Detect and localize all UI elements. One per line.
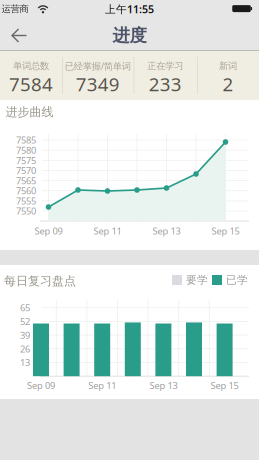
staticText: 2 (222, 72, 233, 96)
button[interactable]: 已学 (212, 273, 248, 286)
staticText: Sep 09 (27, 379, 55, 392)
staticText: 已学 (226, 273, 248, 286)
staticText: 7555 (16, 195, 36, 207)
staticText: 新词 (219, 60, 237, 72)
staticText: 7584 (9, 72, 53, 96)
staticText: 7570 (16, 164, 36, 177)
staticText: 每日复习盘点 (4, 274, 76, 288)
staticText: 进度 (112, 25, 146, 46)
staticText: 进步曲线 (5, 105, 53, 119)
staticText: 7580 (16, 144, 36, 156)
staticText: 26 (20, 343, 30, 355)
staticText: 正在学习 (147, 60, 183, 72)
staticText: Sep 13 (152, 225, 180, 237)
staticText: 39 (20, 329, 30, 341)
staticText: 7560 (16, 184, 36, 197)
staticText: 要学 (186, 273, 208, 286)
staticText: 233 (149, 72, 182, 96)
staticText: Sep 13 (149, 379, 177, 392)
staticText: 7585 (16, 134, 36, 146)
staticText: 运营商 (1, 3, 28, 15)
staticText: Sep 15 (211, 225, 239, 237)
staticText: 7575 (16, 154, 36, 166)
staticText: Sep 15 (211, 379, 239, 392)
staticText: 7550 (16, 205, 36, 217)
staticText: 52 (20, 315, 30, 328)
staticText: 65 (20, 301, 30, 314)
staticText: 13 (20, 356, 30, 369)
staticText: 上午11:55 (105, 2, 154, 16)
staticText: Sep 09 (34, 225, 62, 237)
staticText: 7565 (16, 174, 36, 187)
button[interactable] (0, 0, 36, 34)
staticText: 已经掌握/简单词 (65, 60, 131, 72)
button[interactable]: 要学 (172, 273, 208, 286)
staticText: Sep 11 (93, 225, 121, 237)
staticText: 单词总数 (13, 60, 49, 72)
staticText: 7349 (76, 72, 120, 96)
staticText: Sep 11 (88, 379, 116, 392)
